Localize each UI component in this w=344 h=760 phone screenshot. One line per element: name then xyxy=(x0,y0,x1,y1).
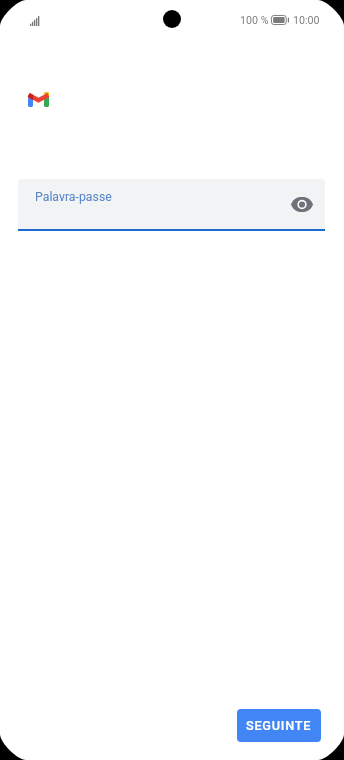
button[interactable]: Mostrar palavra-passe xyxy=(288,190,316,218)
staticText: 10:00 xyxy=(293,14,320,27)
button[interactable]: SEGUINTE xyxy=(237,709,321,742)
staticText: Palavra-passe xyxy=(35,190,112,204)
button[interactable]: Palavra-passe xyxy=(18,179,325,229)
staticText: SEGUINTE xyxy=(246,718,312,733)
staticText: 100 % xyxy=(240,14,269,27)
